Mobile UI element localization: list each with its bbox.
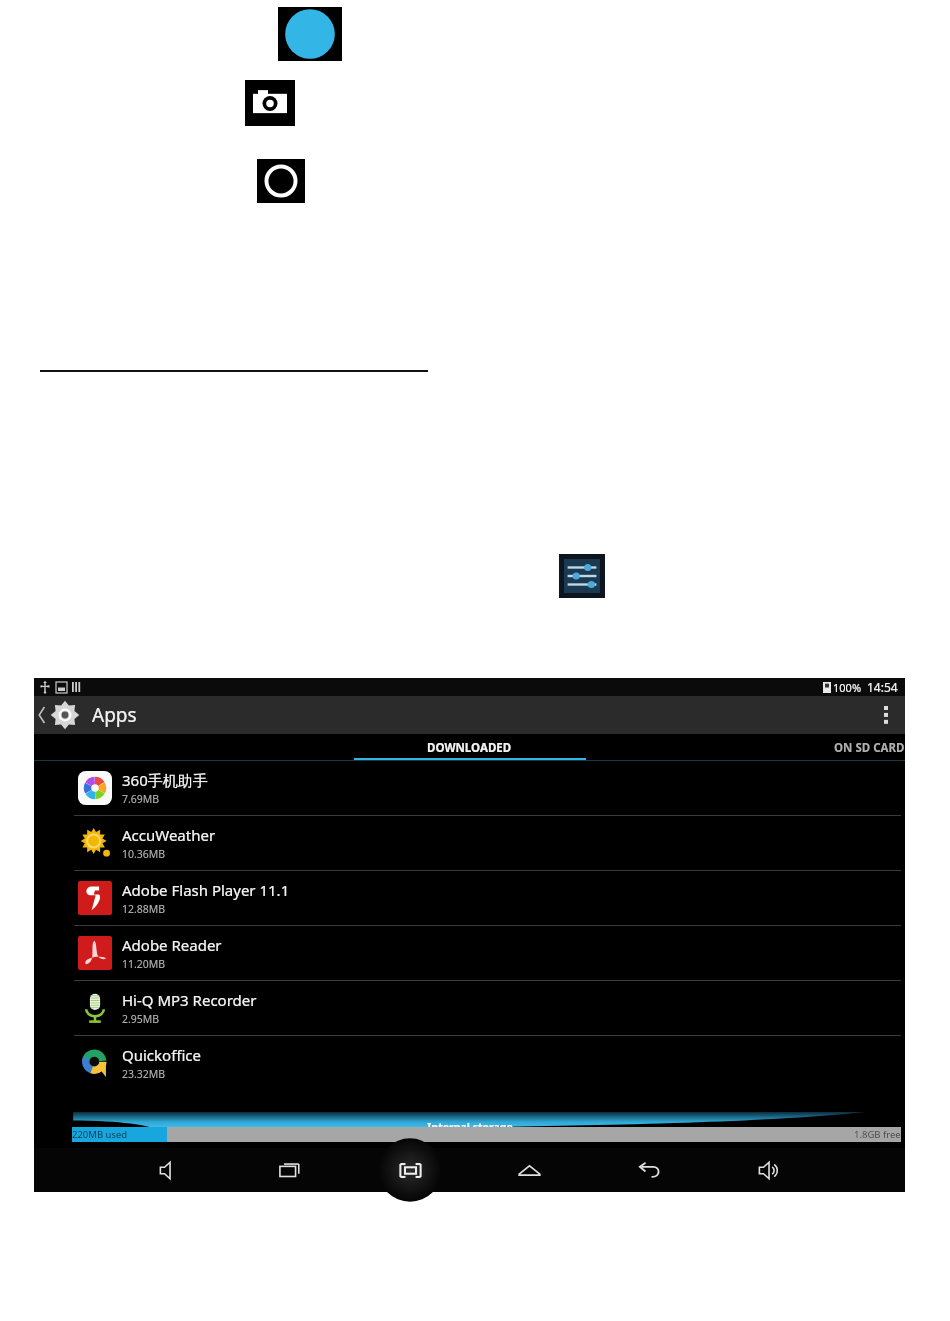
button[interactable]: DOWNLOADED <box>315 734 624 761</box>
staticText: 12.88MB <box>122 902 166 916</box>
staticText: Internal storage <box>427 1120 513 1134</box>
staticText: 220MB used <box>72 1128 128 1141</box>
staticText: 360手机助手 <box>122 770 208 790</box>
staticText: 10.36MB <box>122 847 166 861</box>
staticText: Quickoffice <box>122 1045 201 1065</box>
staticText: 23.32MB <box>122 1067 166 1081</box>
staticText: 1.8GB free <box>854 1128 901 1141</box>
button[interactable]: ON SD CARD <box>624 734 905 761</box>
button[interactable]: 360手机助手 <box>34 761 905 815</box>
staticText: Hi-Q MP3 Recorder <box>122 990 257 1010</box>
button[interactable]: Screenshot <box>384 1148 436 1192</box>
button[interactable]: Quickoffice <box>34 1036 905 1090</box>
button[interactable]: Volume up <box>743 1148 795 1192</box>
other: Settings <box>48 698 82 732</box>
staticText: ON SD CARD <box>834 740 905 756</box>
button[interactable]: Hi-Q MP3 Recorder <box>34 981 905 1035</box>
button[interactable] <box>34 734 315 761</box>
staticText: 2.95MB <box>122 1012 160 1026</box>
button[interactable]: AccuWeather <box>34 816 905 870</box>
staticText: 11.20MB <box>122 957 166 971</box>
staticText: 14:54 <box>867 679 898 695</box>
staticText: 7.69MB <box>122 792 160 806</box>
button[interactable]: Back <box>623 1148 675 1192</box>
button[interactable]: Adobe Flash Player 11.1 <box>34 871 905 925</box>
staticText: 100% <box>833 680 862 695</box>
button[interactable]: Home <box>503 1148 555 1192</box>
staticText: Adobe Flash Player 11.1 <box>122 880 290 900</box>
button[interactable]: Settings <box>34 696 905 734</box>
staticText: Adobe Reader <box>122 935 222 955</box>
staticText: DOWNLOADED <box>427 740 512 756</box>
staticText: AccuWeather <box>122 825 216 845</box>
staticText: Apps <box>92 702 137 728</box>
button[interactable]: Adobe Reader <box>34 926 905 980</box>
button[interactable]: Recent apps <box>264 1148 316 1192</box>
button[interactable]: Volume down <box>144 1148 196 1192</box>
button[interactable]: More options <box>867 696 905 734</box>
